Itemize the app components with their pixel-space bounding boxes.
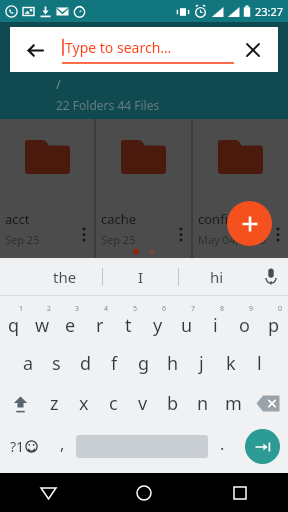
staticText: 0 — [278, 304, 283, 314]
staticText: 23:27 — [255, 4, 284, 19]
staticText: b — [167, 391, 179, 416]
button[interactable]: 5 — [114, 300, 143, 343]
button[interactable]: 4 — [85, 300, 114, 343]
staticText: t — [125, 313, 132, 338]
staticText: u — [181, 313, 193, 338]
staticText: / — [56, 75, 61, 93]
staticText: y — [153, 313, 163, 338]
staticText: r — [96, 313, 104, 338]
button[interactable]: More options — [172, 220, 190, 248]
staticText: 3 — [75, 304, 80, 314]
button[interactable]: x — [69, 383, 98, 423]
staticText: x — [79, 391, 89, 416]
staticText: 4 — [104, 304, 109, 314]
button[interactable]: Next — [245, 429, 280, 464]
staticText: n — [197, 391, 209, 416]
button[interactable]: 6 — [143, 300, 172, 343]
button[interactable]: 9 — [230, 300, 259, 343]
staticText: , — [60, 433, 65, 455]
button[interactable]: Back — [19, 34, 51, 66]
button[interactable]: More options — [269, 220, 287, 248]
staticText: w — [35, 313, 50, 338]
button[interactable]: config — [193, 119, 288, 258]
button[interactable]: hi — [179, 258, 254, 295]
staticText: c — [109, 391, 118, 416]
button[interactable]: More options — [75, 220, 93, 248]
button[interactable]: Home — [96, 473, 192, 512]
button[interactable]: Clear search — [237, 34, 269, 66]
staticText: Type to search… — [65, 38, 172, 57]
button[interactable]: f — [100, 343, 129, 383]
staticText: May 04, 1973 — [198, 232, 267, 247]
staticText: . — [220, 433, 225, 455]
staticText: a — [23, 351, 34, 376]
staticText: f — [111, 351, 118, 376]
staticText: 9 — [249, 304, 254, 314]
button[interactable]: 1 — [0, 300, 28, 343]
button[interactable]: Symbols and emoji — [0, 423, 48, 470]
button[interactable]: acct — [0, 119, 94, 258]
button[interactable]: h — [158, 343, 187, 383]
button[interactable]: 0 — [259, 300, 288, 343]
staticText: g — [138, 351, 150, 376]
staticText: acct — [5, 210, 30, 228]
button[interactable]: Back — [0, 473, 96, 512]
staticText: 22 Folders 44 Files — [56, 97, 160, 113]
staticText: z — [50, 391, 59, 416]
button[interactable]: Recent apps — [192, 473, 288, 512]
staticText: 8 — [220, 304, 225, 314]
staticText: s — [52, 351, 61, 376]
button[interactable]: . — [208, 423, 236, 470]
button[interactable]: l — [245, 343, 274, 383]
button[interactable]: Backspace — [248, 383, 288, 423]
button[interactable]: v — [128, 383, 158, 423]
staticText: o — [239, 313, 250, 338]
staticText: 5 — [133, 304, 138, 314]
staticText: v — [138, 391, 148, 416]
button[interactable]: d — [71, 343, 100, 383]
button[interactable]: Add — [227, 201, 272, 246]
button[interactable]: Voice input — [254, 258, 288, 295]
button[interactable]: 8 — [201, 300, 230, 343]
button[interactable]: Shift — [0, 383, 40, 423]
button[interactable]: n — [188, 383, 218, 423]
button[interactable]: g — [129, 343, 158, 383]
staticText: e — [65, 313, 76, 338]
button[interactable]: cache — [96, 119, 191, 258]
button[interactable]: 2 — [28, 300, 56, 343]
button[interactable]: b — [158, 383, 188, 423]
button[interactable]: s — [42, 343, 71, 383]
staticText: p — [268, 313, 280, 338]
staticText: the — [53, 267, 77, 287]
staticText: 1 — [19, 304, 24, 314]
button[interactable]: k — [216, 343, 245, 383]
staticText: 7 — [191, 304, 196, 314]
button[interactable]: I — [103, 258, 178, 295]
button[interactable]: , — [48, 423, 76, 470]
staticText: m — [225, 391, 242, 416]
staticText: q — [8, 313, 20, 338]
button[interactable]: the — [28, 258, 102, 295]
staticText: I — [138, 267, 144, 287]
button[interactable]: z — [40, 383, 69, 423]
button[interactable]: 7 — [172, 300, 201, 343]
staticText: h — [167, 351, 179, 376]
staticText: l — [257, 351, 262, 376]
staticText: 2 — [47, 304, 52, 314]
staticText: Sep 25 — [5, 232, 40, 247]
staticText: Sep 25 — [101, 232, 136, 247]
staticText: hi — [210, 267, 224, 287]
staticText: d — [80, 351, 92, 376]
staticText: k — [226, 351, 236, 376]
button[interactable]: 3 — [56, 300, 85, 343]
button[interactable]: j — [187, 343, 216, 383]
staticText: j — [199, 351, 204, 376]
staticText: 6 — [162, 304, 167, 314]
button[interactable]: a — [14, 343, 42, 383]
staticText: ?1 — [10, 437, 25, 456]
staticText: cache — [101, 210, 137, 228]
button[interactable]: m — [218, 383, 248, 423]
button[interactable]: c — [98, 383, 128, 423]
staticText: config — [198, 210, 236, 228]
